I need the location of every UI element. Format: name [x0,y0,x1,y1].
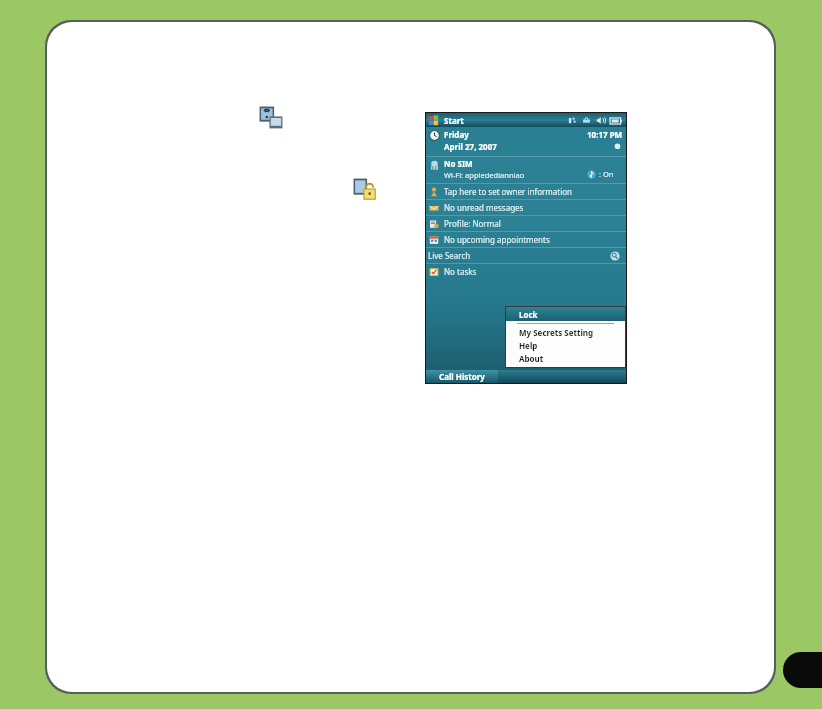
button[interactable]: About [506,352,625,365]
staticText: 10:17 PM [587,129,623,140]
other: Device lock icon [352,177,378,203]
button[interactable]: No tasks [426,264,626,279]
button[interactable]: Tap here to set owner information [426,184,626,199]
button[interactable]: No upcoming appointments [426,232,626,247]
other: Start [428,115,439,126]
button[interactable]: No SIM [426,157,626,183]
button[interactable]: Friday [426,127,626,156]
button[interactable]: Call History [426,370,498,383]
staticText: No tasks [444,266,477,277]
button[interactable]: My Secrets Setting [506,326,625,339]
staticText: Live Search [428,250,471,261]
staticText: Lock [519,309,538,320]
staticText: Tap here to set owner information [444,186,573,197]
button[interactable]: Start [426,113,626,127]
staticText: Help [519,340,538,351]
button[interactable]: Lock [506,307,625,321]
staticText: Wi-Fi: applededianniao [444,170,525,180]
staticText: Start [444,115,464,126]
other: Search [610,251,620,261]
staticText: About [519,353,544,364]
staticText: No upcoming appointments [444,234,550,245]
staticText: My Secrets Setting [519,327,594,338]
button[interactable]: Live Search [426,248,626,263]
staticText: : On [599,169,614,179]
other: Wireless manager icon [258,105,284,131]
staticText: No unread messages [444,202,524,213]
staticText: April 27, 2007 [444,141,497,152]
staticText: Profile: Normal [444,218,501,229]
staticText: No SIM [444,158,473,169]
button[interactable]: Help [506,339,625,352]
button[interactable]: Profile: Normal [426,216,626,231]
staticText: Friday [444,129,469,140]
button[interactable]: No unread messages [426,200,626,215]
staticText: Call History [439,371,485,382]
